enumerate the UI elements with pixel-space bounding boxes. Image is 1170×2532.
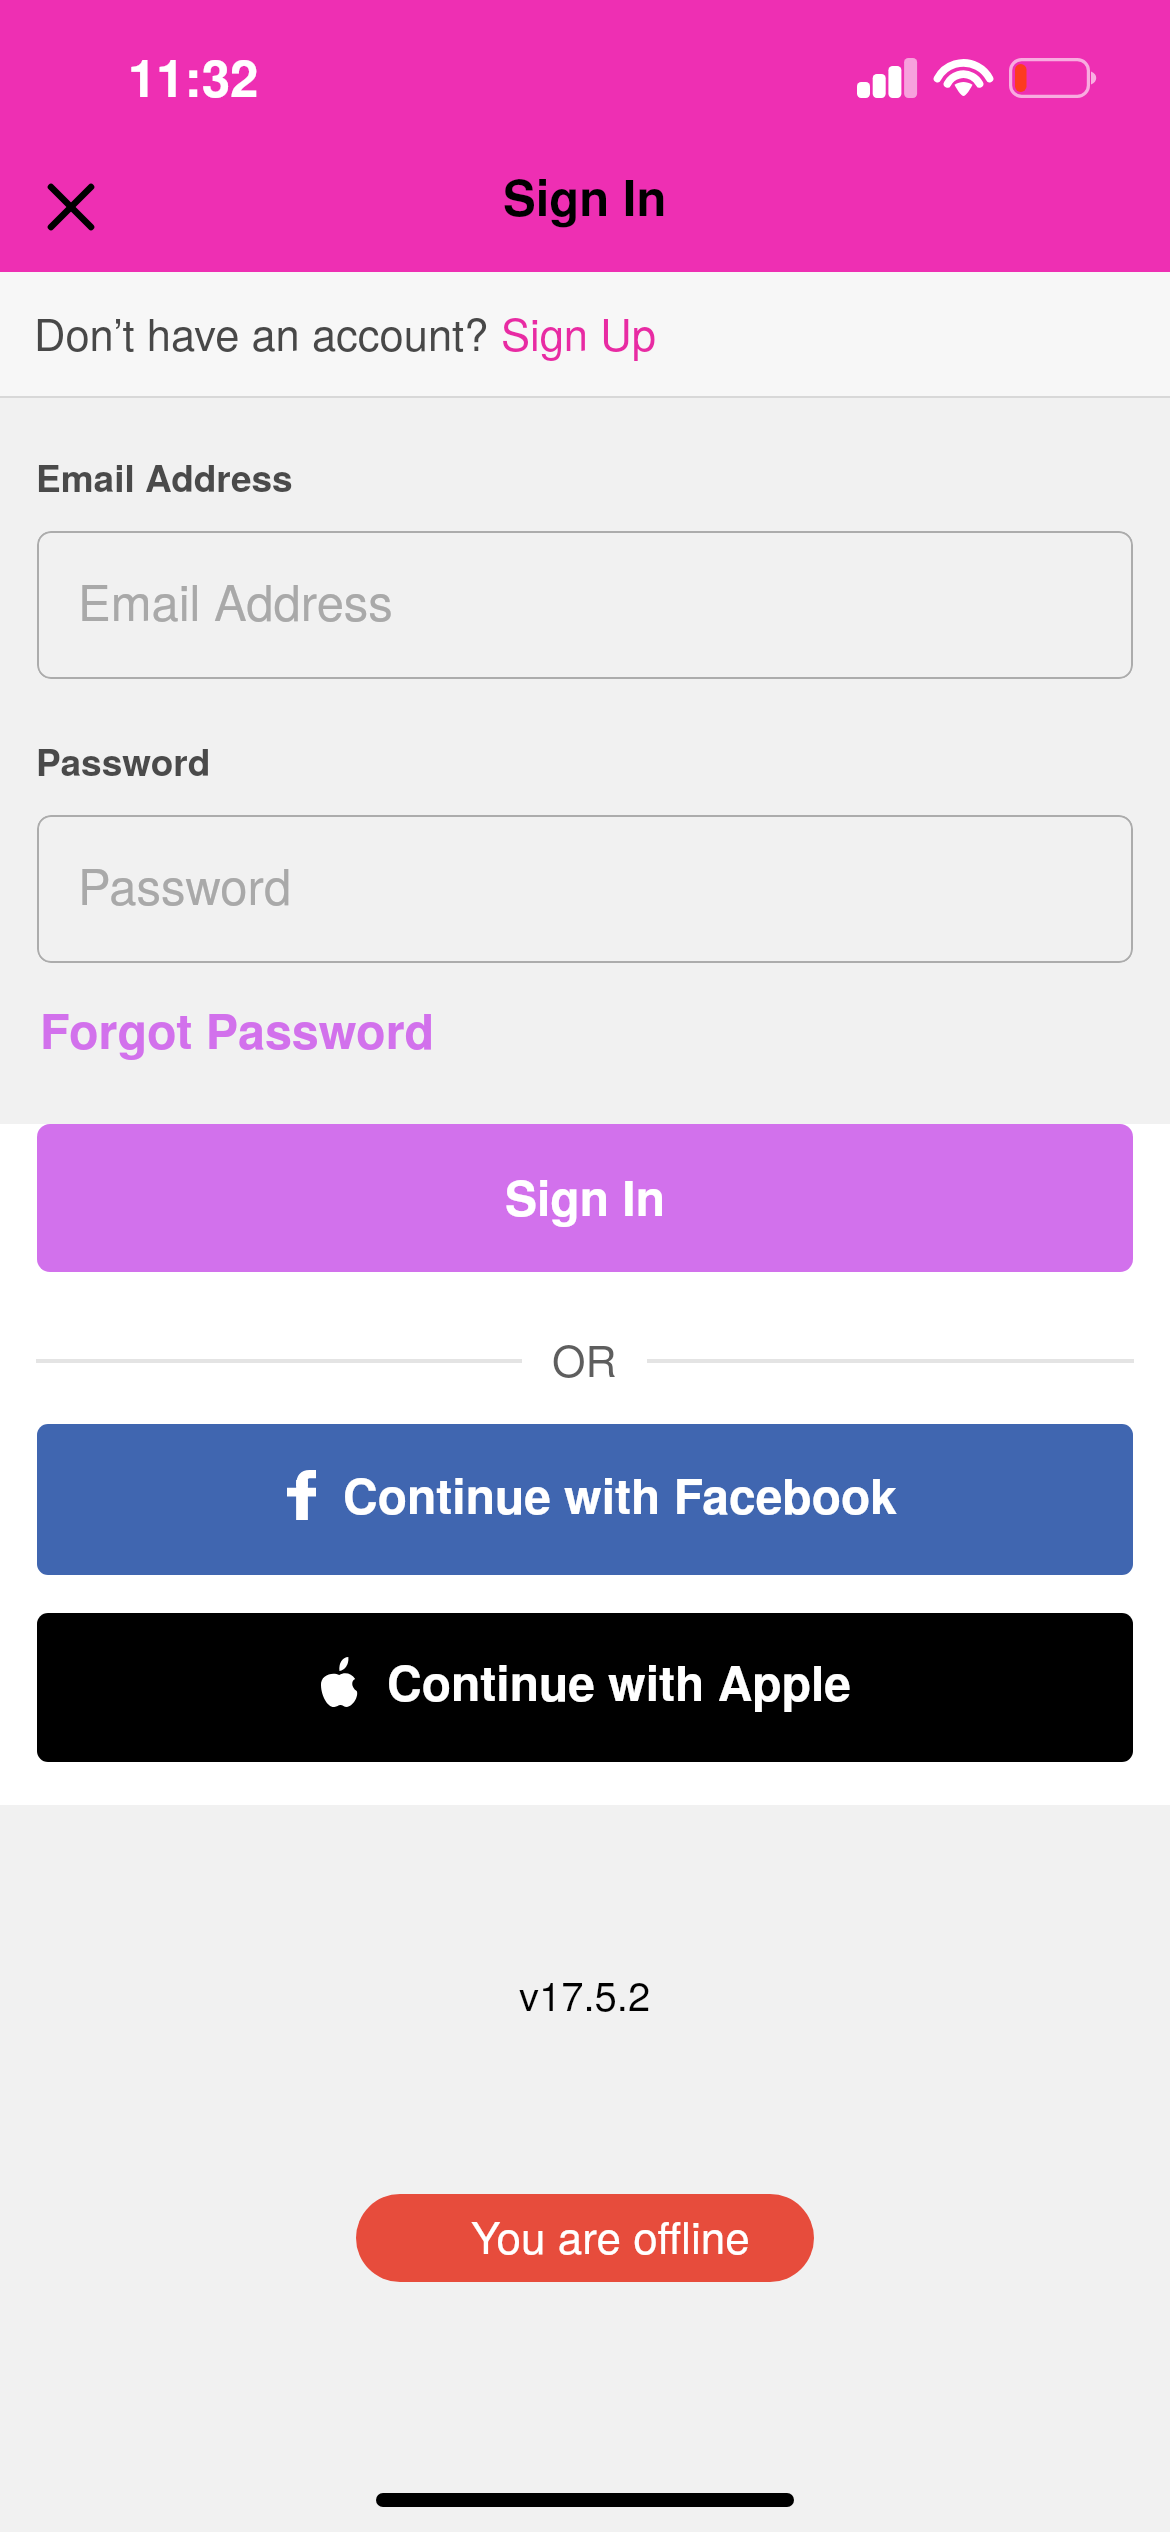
button[interactable]: Password bbox=[37, 815, 1133, 963]
staticText: Password bbox=[36, 734, 211, 787]
staticText: Sign Up bbox=[501, 301, 656, 363]
staticText: Email Address bbox=[78, 565, 393, 635]
staticText: You are offline bbox=[471, 2203, 750, 2266]
button[interactable]: Continue with Facebook bbox=[37, 1424, 1133, 1575]
button[interactable]: Close bbox=[24, 160, 118, 254]
staticText: Forgot Password bbox=[40, 994, 435, 1063]
staticText: v17.5.2 bbox=[519, 1965, 651, 2022]
staticText: Continue with Facebook bbox=[343, 1460, 898, 1529]
button[interactable]: Don’t have an account? bbox=[0, 272, 1170, 398]
staticText: Sign In bbox=[505, 1162, 666, 1231]
staticText: Continue with Apple bbox=[387, 1647, 852, 1716]
button[interactable]: Sign In bbox=[37, 1124, 1133, 1272]
button[interactable]: Email Address bbox=[37, 531, 1133, 679]
staticText: OR bbox=[552, 1328, 617, 1390]
staticText: Email Address bbox=[36, 450, 293, 503]
staticText: Sign In bbox=[503, 161, 667, 231]
button[interactable]: Forgot Password bbox=[27, 976, 448, 1081]
staticText: Don’t have an account? bbox=[34, 301, 501, 363]
button[interactable]: Continue with Apple bbox=[37, 1613, 1133, 1762]
button[interactable]: Sign Up bbox=[501, 301, 656, 363]
button[interactable]: You are offline bbox=[356, 2194, 814, 2282]
staticText: Password bbox=[78, 849, 292, 919]
staticText: 11:32 bbox=[128, 40, 259, 113]
